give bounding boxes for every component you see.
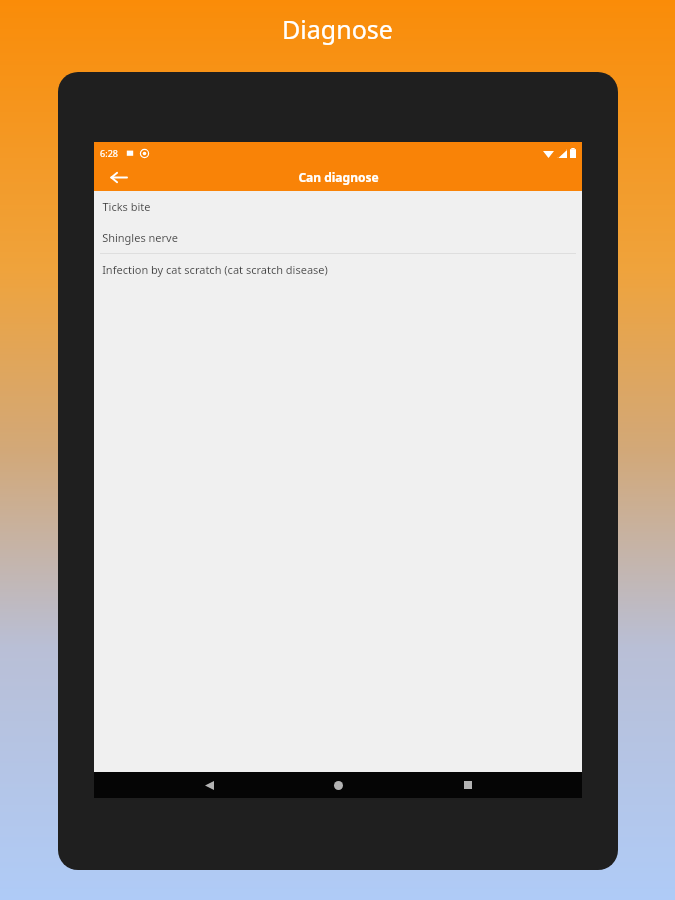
button[interactable]: Infection by cat scratch (cat scratch di… xyxy=(94,254,582,285)
button[interactable]: Ticks bite xyxy=(94,191,582,222)
staticText: Diagnose xyxy=(282,12,393,46)
staticText: Ticks bite xyxy=(102,199,151,214)
staticText: Shingles nerve xyxy=(102,230,178,245)
button[interactable]: Recent apps xyxy=(453,772,483,798)
button[interactable]: Home xyxy=(323,772,353,798)
button[interactable]: Shingles nerve xyxy=(94,222,582,253)
staticText: Infection by cat scratch (cat scratch di… xyxy=(102,262,328,277)
staticText: Can diagnose xyxy=(298,169,379,185)
button[interactable]: Back xyxy=(106,165,130,189)
staticText: 6:28 xyxy=(100,147,118,159)
button[interactable]: Back xyxy=(194,772,224,798)
